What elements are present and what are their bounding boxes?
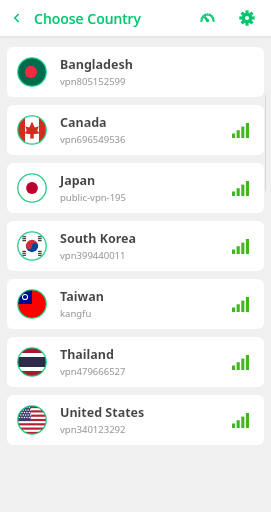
button[interactable]: Back xyxy=(0,0,34,36)
button[interactable]: Bangladesh xyxy=(7,47,264,97)
staticText: Bangladesh xyxy=(60,56,133,73)
button[interactable]: Settings xyxy=(229,0,265,36)
button[interactable]: Thailand xyxy=(7,337,264,387)
button[interactable]: Japan xyxy=(7,163,264,213)
staticText: Taiwan xyxy=(60,288,104,305)
button[interactable]: Speed test xyxy=(189,0,225,36)
button[interactable]: Canada xyxy=(7,105,264,155)
button[interactable]: South Korea xyxy=(7,221,264,271)
staticText: vpn479666527 xyxy=(60,365,126,378)
staticText: kangfu xyxy=(60,307,92,320)
staticText: vpn340123292 xyxy=(60,423,126,436)
staticText: vpn696549536 xyxy=(60,133,126,146)
staticText: Japan xyxy=(60,172,96,189)
staticText: Canada xyxy=(60,114,107,131)
staticText: Thailand xyxy=(60,346,114,363)
staticText: vpn399440011 xyxy=(60,249,126,262)
staticText: vpn805152599 xyxy=(60,75,126,88)
staticText: Choose Country xyxy=(34,9,141,28)
staticText: South Korea xyxy=(60,230,137,247)
button[interactable]: United States xyxy=(7,395,264,445)
button[interactable]: Taiwan xyxy=(7,279,264,329)
staticText: United States xyxy=(60,404,145,421)
staticText: public-vpn-195 xyxy=(60,191,126,204)
